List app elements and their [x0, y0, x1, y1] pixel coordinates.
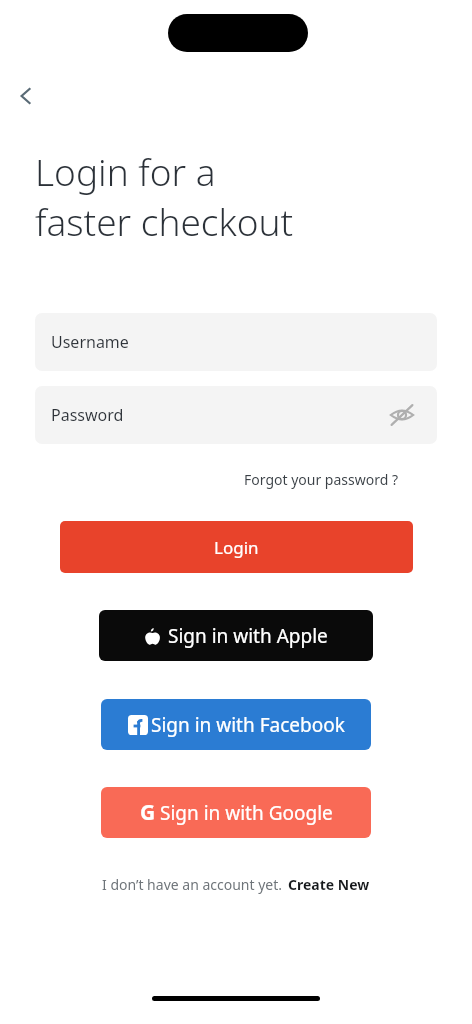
staticText: Login for a — [35, 146, 216, 196]
staticText: faster checkout — [35, 196, 294, 246]
staticText: Create New — [288, 875, 370, 894]
button[interactable]: Password — [35, 386, 437, 444]
staticText: Sign in with Facebook — [151, 712, 345, 738]
button[interactable]: Login — [60, 521, 413, 573]
button[interactable]: Forgot your password ? — [240, 466, 403, 493]
staticText: Login — [214, 536, 259, 559]
staticText: Username — [51, 331, 129, 353]
staticText: Password — [51, 404, 124, 426]
button[interactable]: Create New — [288, 871, 370, 898]
button[interactable]: G — [101, 787, 371, 838]
button[interactable]: Sign in with Facebook — [101, 699, 371, 750]
staticText: Forgot your password ? — [244, 470, 399, 489]
staticText: I don’t have an account yet. — [102, 875, 283, 894]
button[interactable]: Sign in with Apple — [99, 610, 373, 661]
staticText: Sign in with Apple — [168, 623, 328, 649]
staticText: Sign in with Google — [160, 800, 333, 826]
button[interactable]: Username — [35, 313, 437, 371]
button[interactable]: Show password — [385, 398, 419, 432]
staticText: G — [140, 798, 156, 827]
button[interactable]: Back — [4, 74, 48, 118]
